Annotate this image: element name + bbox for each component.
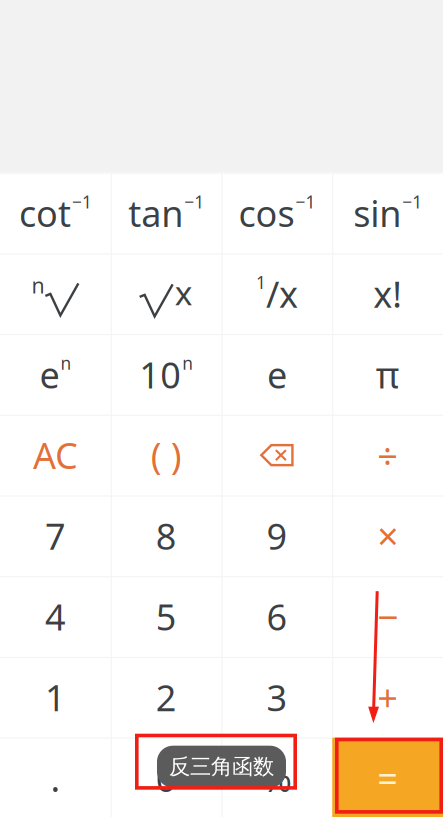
staticText: /x xyxy=(266,270,298,318)
staticText: ÷ xyxy=(377,431,398,479)
button[interactable]: 1 xyxy=(0,657,111,738)
button[interactable]: AC xyxy=(0,415,111,495)
button[interactable]: sin xyxy=(332,173,443,253)
button[interactable]: × xyxy=(332,495,443,576)
staticText: − xyxy=(377,592,398,641)
staticText: cos xyxy=(238,189,294,237)
button[interactable]: − xyxy=(332,576,443,657)
staticText: e xyxy=(39,350,59,398)
staticText: + xyxy=(377,673,398,721)
button[interactable]: ÷ xyxy=(332,415,443,495)
button[interactable]: e xyxy=(221,334,332,415)
staticText: n xyxy=(182,351,193,374)
button[interactable]: x xyxy=(111,253,222,334)
button[interactable]: n xyxy=(0,253,111,334)
button[interactable]: π xyxy=(332,334,443,415)
staticText: −1 xyxy=(72,190,92,213)
button[interactable]: 5 xyxy=(111,576,222,657)
button[interactable]: cot xyxy=(0,173,111,253)
staticText: % xyxy=(262,754,292,802)
staticText: x! xyxy=(373,270,402,318)
staticText: 5 xyxy=(156,593,177,640)
staticText: 1 xyxy=(256,271,266,294)
staticText: cot xyxy=(19,189,71,237)
staticText: 6 xyxy=(266,593,287,640)
staticText: 3 xyxy=(266,673,287,721)
staticText: AC xyxy=(33,431,78,479)
staticText: π xyxy=(376,350,400,398)
button[interactable]: 1 xyxy=(221,253,332,334)
staticText: −1 xyxy=(184,190,204,213)
staticText: tan xyxy=(128,189,183,237)
button[interactable]: 2 xyxy=(111,657,222,738)
button[interactable]: x! xyxy=(332,253,443,334)
staticText: × xyxy=(377,511,398,561)
button[interactable]: % xyxy=(221,738,332,817)
button[interactable]: 7 xyxy=(0,495,111,576)
staticText: sin xyxy=(353,189,401,237)
staticText: 7 xyxy=(45,512,66,560)
button[interactable]: . xyxy=(0,738,111,817)
staticText: n xyxy=(60,351,71,374)
button[interactable]: = xyxy=(332,738,443,817)
button[interactable]: 8 xyxy=(111,495,222,576)
button[interactable]: 9 xyxy=(221,495,332,576)
staticText: 4 xyxy=(45,593,66,640)
staticText: n xyxy=(31,271,44,299)
button[interactable]: 3 xyxy=(221,657,332,738)
staticText: 0 xyxy=(156,754,177,802)
button[interactable] xyxy=(221,415,332,495)
button[interactable]: 0 xyxy=(111,738,222,817)
staticText: 9 xyxy=(266,512,287,560)
staticText: 8 xyxy=(156,512,177,560)
staticText: x xyxy=(175,270,193,314)
staticText: 10 xyxy=(139,350,181,398)
button[interactable]: e xyxy=(0,334,111,415)
button[interactable]: cos xyxy=(221,173,332,253)
staticText: ( ) xyxy=(151,431,182,479)
button[interactable]: + xyxy=(332,657,443,738)
staticText: −1 xyxy=(295,190,315,213)
button[interactable]: 10 xyxy=(111,334,222,415)
button[interactable]: tan xyxy=(111,173,222,253)
staticText: = xyxy=(377,754,398,802)
staticText: 反三角函数 xyxy=(169,754,274,780)
button[interactable]: 6 xyxy=(221,576,332,657)
staticText: 2 xyxy=(156,673,177,721)
staticText: 1 xyxy=(45,673,66,721)
button[interactable]: 4 xyxy=(0,576,111,657)
staticText: −1 xyxy=(402,190,422,213)
button[interactable]: ( ) xyxy=(111,415,222,495)
staticText: e xyxy=(267,350,287,398)
staticText: . xyxy=(50,754,60,802)
